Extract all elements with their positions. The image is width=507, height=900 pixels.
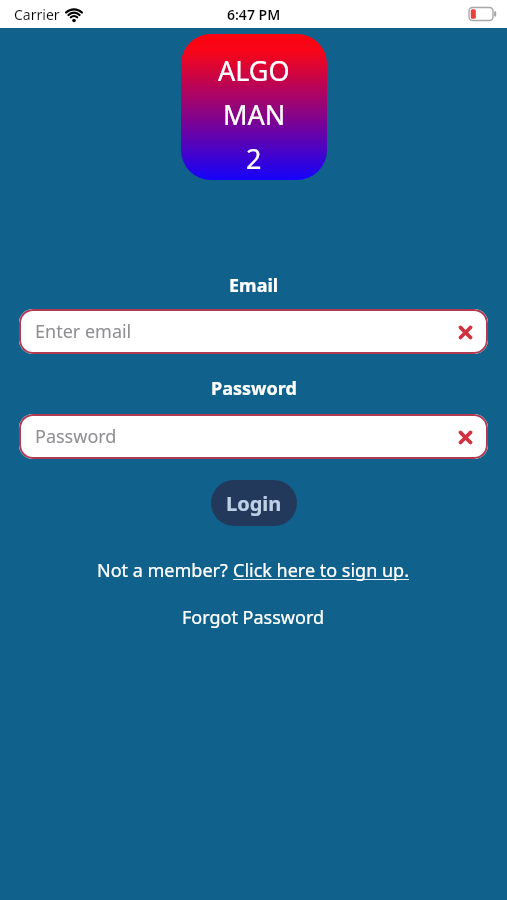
button[interactable]: [451, 423, 479, 451]
staticText: Email: [229, 273, 279, 298]
button[interactable]: Click here to sign up.: [233, 558, 410, 583]
staticText: MAN: [223, 96, 286, 133]
staticText: Enter email: [35, 319, 132, 344]
staticText: Password: [211, 376, 297, 401]
staticText: 2: [246, 140, 262, 177]
button[interactable]: [451, 318, 479, 346]
button[interactable]: Login: [211, 480, 297, 526]
staticText: Carrier: [14, 5, 60, 24]
staticText: ALGO: [218, 52, 290, 89]
button[interactable]: Password: [19, 414, 488, 459]
button[interactable]: Forgot Password: [182, 605, 325, 630]
staticText: 6:47 PM: [227, 5, 281, 24]
staticText: Password: [35, 424, 117, 449]
staticText: Login: [226, 490, 282, 517]
button[interactable]: Enter email: [19, 309, 488, 354]
staticText: Not a member?: [97, 558, 233, 583]
